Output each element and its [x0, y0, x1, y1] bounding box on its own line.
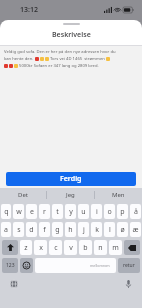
button[interactable]: Backspace — [124, 240, 140, 255]
button[interactable]: mellomrom — [35, 258, 116, 273]
staticText: b — [83, 243, 88, 253]
button[interactable]: Men — [95, 188, 142, 202]
button[interactable]: s — [13, 222, 24, 237]
staticText: Men — [112, 191, 125, 199]
staticText: mellomrom — [90, 263, 110, 268]
staticText: v — [69, 243, 73, 253]
staticText: ø — [120, 225, 125, 235]
button[interactable]: Jeg — [47, 188, 94, 202]
button[interactable]: e — [26, 204, 37, 219]
staticText: å — [134, 207, 138, 217]
staticText: h — [68, 225, 73, 235]
staticText: c — [54, 243, 58, 253]
staticText: p — [120, 207, 125, 217]
staticText: 123 — [6, 262, 15, 269]
button[interactable]: ø — [117, 222, 128, 237]
staticText: y — [69, 207, 73, 217]
button[interactable]: u — [78, 204, 89, 219]
button[interactable]: Ferdig — [6, 172, 136, 186]
button[interactable]: 123 — [2, 258, 18, 273]
staticText: retur — [123, 262, 135, 269]
button[interactable]: t — [52, 204, 63, 219]
staticText: a — [4, 225, 8, 235]
button[interactable]: b — [79, 240, 92, 255]
staticText: 5000kr Sofaen er 347 lang og 2809 bred. — [19, 63, 99, 69]
staticText: x — [39, 243, 43, 253]
staticText: æ — [132, 225, 139, 235]
staticText: o — [107, 207, 112, 217]
staticText: Jeg — [66, 191, 75, 199]
staticText: r — [43, 207, 46, 217]
button[interactable]: o — [104, 204, 115, 219]
button[interactable]: h — [65, 222, 76, 237]
staticText: u — [81, 207, 86, 217]
button[interactable]: y — [65, 204, 76, 219]
button[interactable]: q — [1, 204, 11, 219]
staticText: d — [29, 225, 34, 235]
button[interactable]: l — [104, 222, 115, 237]
staticText: k — [95, 225, 99, 235]
staticText: q — [4, 207, 9, 217]
staticText: m — [112, 243, 119, 253]
staticText: 13:12 — [20, 5, 38, 15]
staticText: g — [55, 225, 60, 235]
button[interactable]: æ — [130, 222, 141, 237]
staticText: Tors vei 4D 1465 strømmen — [50, 56, 105, 62]
staticText: Ferdig — [60, 174, 82, 184]
staticText: Veldig god sofa. Den er her på den nye a… — [4, 49, 116, 55]
button[interactable]: f — [39, 222, 50, 237]
staticText: Det — [18, 191, 28, 199]
staticText: kan hente den. — [4, 56, 35, 62]
staticText: w — [16, 207, 22, 217]
button[interactable]: n — [94, 240, 107, 255]
button[interactable]: Change keyboard language — [8, 278, 20, 290]
button[interactable]: g — [52, 222, 63, 237]
staticText: t — [56, 207, 59, 217]
staticText: l — [109, 225, 111, 235]
button[interactable]: p — [117, 204, 128, 219]
button[interactable]: i — [91, 204, 102, 219]
button[interactable]: k — [91, 222, 102, 237]
button[interactable]: Dictation — [122, 278, 134, 290]
button[interactable]: retur — [118, 258, 140, 273]
staticText: z — [24, 243, 28, 253]
button[interactable]: w — [13, 204, 24, 219]
button[interactable]: j — [78, 222, 89, 237]
button[interactable]: x — [34, 240, 47, 255]
button[interactable]: a — [1, 222, 11, 237]
staticText: f — [43, 225, 46, 235]
button[interactable]: Shift — [2, 240, 18, 255]
staticText: e — [30, 207, 34, 217]
button[interactable]: z — [20, 240, 32, 255]
staticText: s — [17, 225, 21, 235]
button[interactable]: m — [109, 240, 122, 255]
button[interactable]: å — [130, 204, 141, 219]
button[interactable]: d — [26, 222, 37, 237]
staticText: j — [83, 225, 85, 235]
button[interactable]: r — [39, 204, 50, 219]
staticText: Beskrivelse — [52, 30, 91, 40]
staticText: i — [96, 207, 98, 217]
staticText: n — [98, 243, 103, 253]
button[interactable]: c — [49, 240, 62, 255]
button[interactable]: Det — [0, 188, 46, 202]
button[interactable]: Emoji — [20, 258, 33, 273]
button[interactable]: v — [64, 240, 77, 255]
